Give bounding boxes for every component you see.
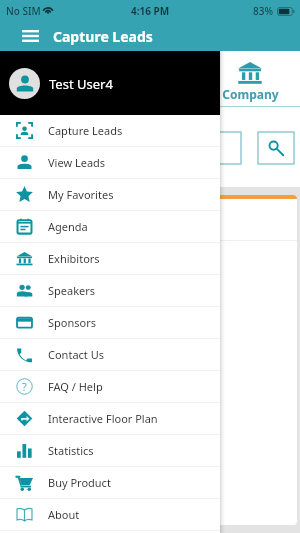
button[interactable]: About [0,499,220,530]
staticText: No SIM [6,4,41,18]
button[interactable]: Agenda [0,211,220,242]
button[interactable] [140,132,241,164]
button[interactable]: Speakers [0,275,220,306]
staticText: Statistics [48,443,94,458]
staticText: Buy Product [48,475,111,490]
button[interactable]: Open navigation drawer [15,21,45,51]
staticText: Attendee [22,86,78,102]
staticText: Exhibitors [48,251,100,266]
button[interactable]: View Leads [0,147,220,178]
staticText: Contact Us [48,347,104,362]
button[interactable]: ? [0,371,220,402]
button[interactable]: Attendee [0,51,100,107]
button[interactable]: Product [100,51,200,107]
staticText: Company [222,86,279,102]
staticText: Capture Leads [48,123,123,138]
button[interactable]: Sponsors [0,307,220,338]
staticText: View Leads [48,155,106,170]
staticText: ? [22,379,27,394]
button[interactable]: Contact Us [0,339,220,370]
staticText: Sponsors [48,315,96,330]
button[interactable]: Exhibitors [0,243,220,274]
button[interactable]: Search [258,132,294,164]
staticText: FAQ / Help [48,379,103,394]
button[interactable]: Interactive Floor Plan [0,403,220,434]
staticText: About [48,507,80,522]
staticText: Capture Leads [53,27,153,46]
staticText: My Favorites [48,187,114,202]
staticText: 83% [253,4,273,18]
button[interactable]: Capture Leads [0,115,220,146]
staticText: Test User4 [49,75,113,93]
staticText: Interactive Floor Plan [48,411,158,426]
staticText: Speakers [48,283,96,298]
button[interactable]: Test User4 [0,51,220,115]
button[interactable]: Buy Product [0,467,220,498]
staticText: Agenda [48,219,88,234]
staticText: 4:16 PM [131,4,170,18]
button[interactable]: Statistics [0,435,220,466]
button[interactable]: Company [200,51,300,107]
button[interactable]: My Favorites [0,179,220,210]
